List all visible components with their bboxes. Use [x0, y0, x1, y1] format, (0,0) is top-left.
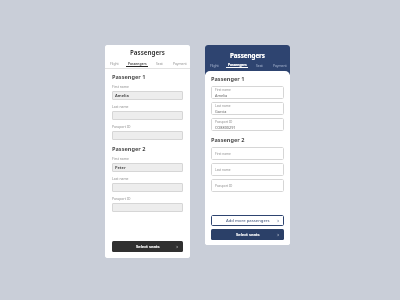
staticText: First name: [112, 84, 129, 89]
staticText: Select seats: [236, 232, 260, 238]
staticText: Payment: [173, 61, 187, 65]
staticText: Garcia: [215, 109, 227, 114]
button[interactable]: Select seats: [211, 229, 284, 240]
staticText: First name: [215, 152, 231, 156]
button[interactable]: Passport ID: [211, 118, 284, 131]
button[interactable]: Payment: [169, 61, 190, 66]
staticText: Passenger 2: [112, 145, 146, 153]
button[interactable]: Flight: [205, 63, 224, 68]
staticText: Passport ID: [112, 196, 131, 201]
staticText: Passenger 2: [211, 136, 245, 144]
staticText: Passengers: [128, 61, 147, 65]
staticText: Passenger 1: [112, 73, 146, 81]
button[interactable]: First name: [211, 86, 284, 99]
staticText: Last name: [112, 104, 129, 109]
button[interactable]: Last name: [211, 163, 284, 176]
button[interactable]: Payment: [269, 63, 290, 68]
staticText: Last name: [215, 104, 231, 108]
staticText: Passengers: [230, 51, 265, 59]
button[interactable]: Last name: [112, 104, 183, 120]
staticText: Last name: [215, 168, 231, 172]
staticText: Last name: [112, 176, 129, 181]
staticText: Passport ID: [215, 120, 233, 124]
staticText: Flight: [110, 61, 119, 65]
staticText: Peter: [115, 165, 126, 170]
button[interactable]: Seat: [150, 61, 169, 66]
button[interactable]: Select seats: [112, 241, 183, 252]
button[interactable]: Flight: [105, 61, 124, 66]
button[interactable]: Passengers: [224, 62, 250, 68]
staticText: Amelia: [115, 93, 129, 98]
staticText: Seat: [156, 61, 163, 65]
button[interactable]: Passport ID: [211, 179, 284, 192]
staticText: First name: [215, 88, 231, 92]
staticText: Passport ID: [215, 184, 233, 188]
button[interactable]: Last name: [211, 102, 284, 115]
staticText: Flight: [210, 63, 219, 67]
staticText: Add more passengers: [226, 218, 270, 224]
staticText: CO8800291: [215, 125, 236, 130]
button[interactable]: Passengers: [124, 61, 150, 67]
staticText: Passenger 1: [211, 75, 245, 83]
staticText: Passport ID: [112, 124, 131, 129]
button[interactable]: First name: [211, 147, 284, 160]
button[interactable]: First name: [112, 84, 183, 100]
button[interactable]: First name: [112, 156, 183, 172]
other: Continue arrow: [175, 245, 179, 249]
staticText: First name: [112, 156, 129, 161]
staticText: Payment: [273, 63, 287, 67]
other: Continue arrow: [276, 233, 280, 237]
other: Continue arrow: [276, 219, 280, 223]
button[interactable]: Last name: [112, 176, 183, 192]
button[interactable]: Passport ID: [112, 124, 183, 140]
button[interactable]: Passport ID: [112, 196, 183, 212]
button[interactable]: Seat: [250, 63, 269, 68]
button[interactable]: Add more passengers: [211, 215, 284, 226]
staticText: Amelia: [215, 93, 228, 98]
staticText: Select seats: [136, 244, 160, 250]
staticText: Passengers: [130, 48, 165, 56]
staticText: Passengers: [228, 62, 247, 66]
staticText: Seat: [256, 63, 263, 67]
